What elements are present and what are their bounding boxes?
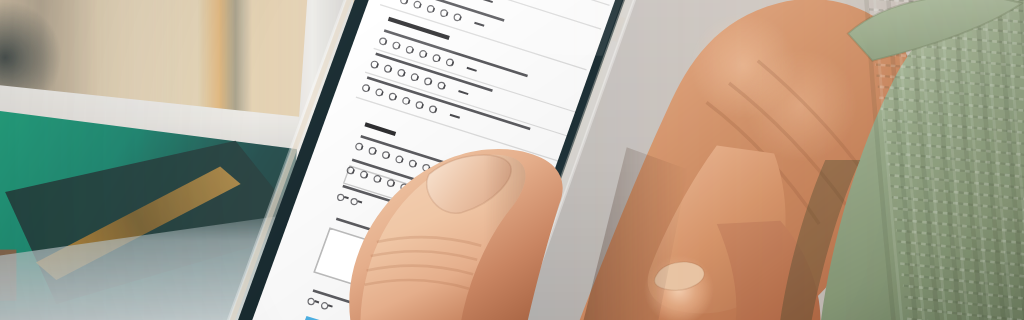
button[interactable]: Patient satisfaction survey on phone <box>0 0 1024 320</box>
